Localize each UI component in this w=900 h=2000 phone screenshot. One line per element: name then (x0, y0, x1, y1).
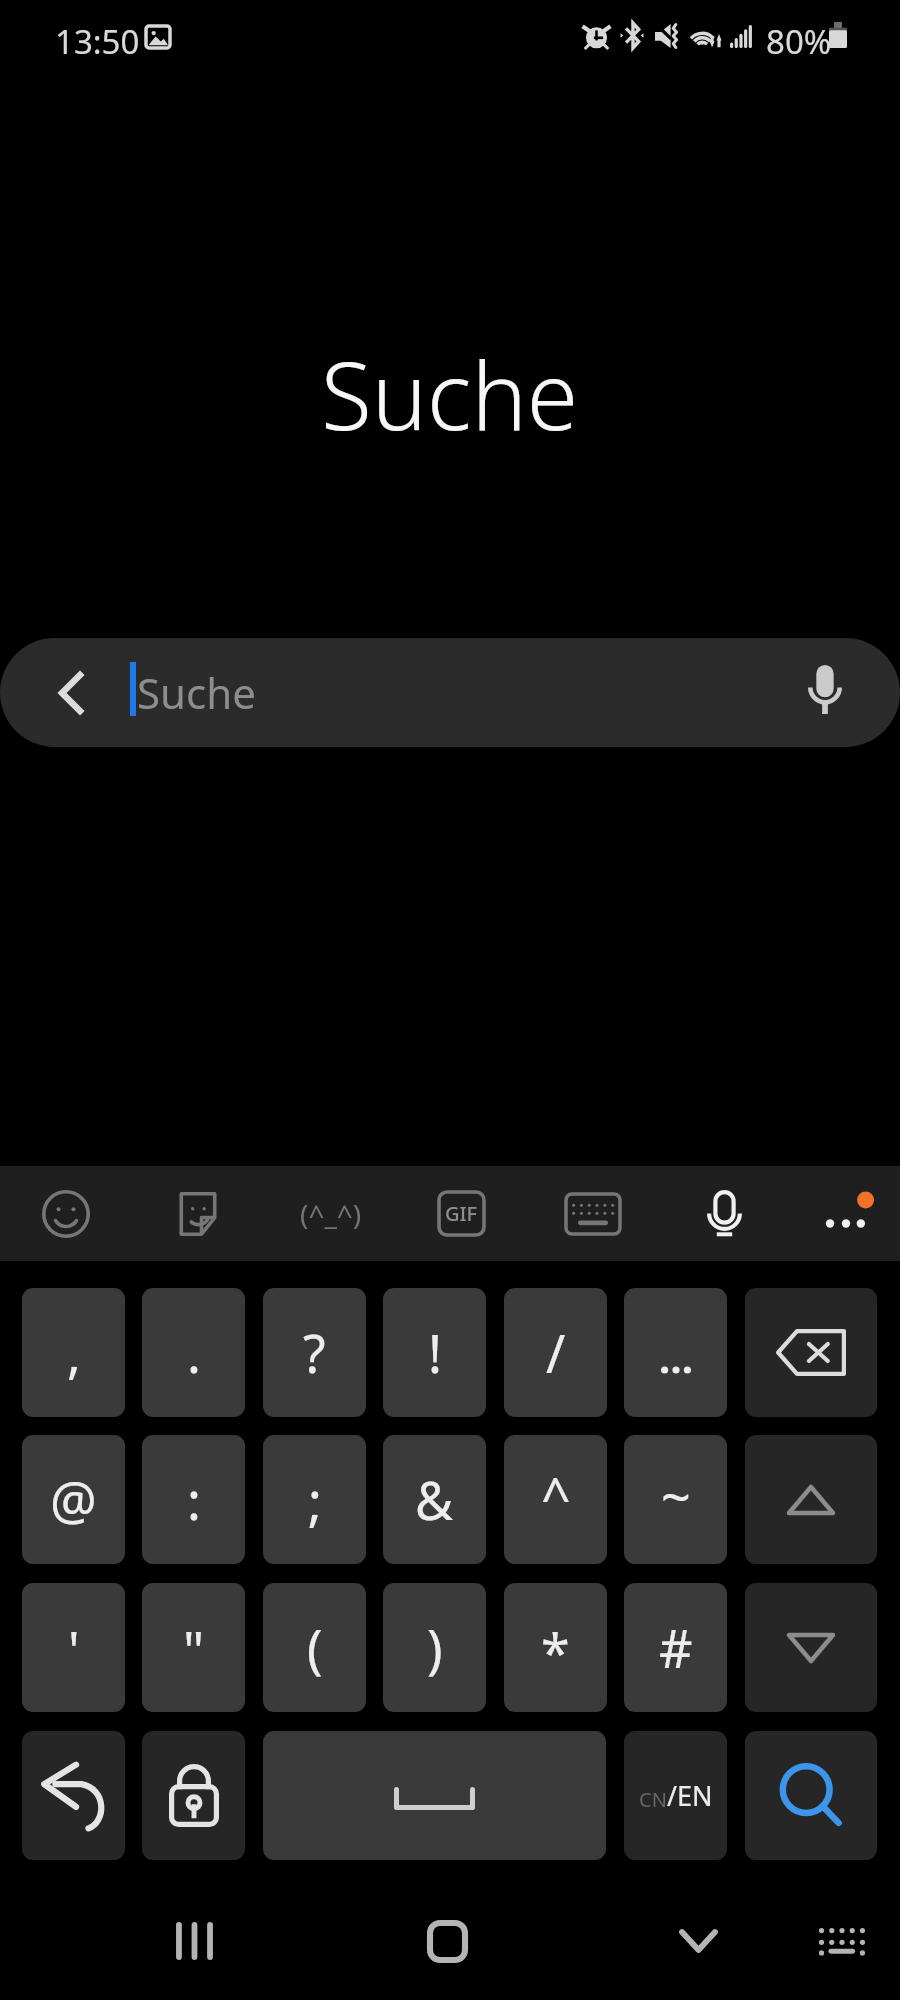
button[interactable]: Recents (134, 1882, 254, 2000)
button[interactable]: ; (263, 1435, 366, 1564)
staticText: . (187, 1317, 201, 1388)
staticText: (^_^) (300, 1195, 362, 1233)
staticText: # (659, 1612, 693, 1683)
button[interactable] (263, 1731, 606, 1860)
staticText: , (67, 1317, 81, 1388)
button[interactable]: Stickers (153, 1166, 243, 1261)
button[interactable]: Home (387, 1882, 507, 2000)
staticText: / (546, 1317, 566, 1388)
button[interactable]: Back (0, 638, 900, 747)
button[interactable]: Voice search (785, 650, 865, 730)
button[interactable]: Keyboard layout (548, 1166, 638, 1261)
button[interactable]: " (142, 1583, 245, 1712)
button[interactable] (22, 1731, 125, 1860)
staticText: Suche (137, 664, 256, 721)
button[interactable]: ' (22, 1583, 125, 1712)
button[interactable]: GIF (416, 1166, 506, 1261)
staticText: 13:50 (55, 19, 140, 64)
button[interactable]: ~ (624, 1435, 727, 1564)
staticText: ! (428, 1317, 442, 1388)
staticText: 80% (766, 19, 832, 64)
staticText: CN (639, 1786, 667, 1813)
button[interactable] (745, 1731, 877, 1860)
staticText: @ (50, 1464, 97, 1535)
staticText: ; (308, 1464, 322, 1535)
staticText: ' (68, 1614, 80, 1685)
button[interactable]: More options (801, 1166, 891, 1261)
button[interactable]: : (142, 1435, 245, 1564)
staticText: ) (427, 1612, 443, 1683)
button[interactable]: Switch keyboard (782, 1882, 900, 2000)
button[interactable]: / (504, 1288, 607, 1417)
staticText: ? (303, 1317, 326, 1388)
button[interactable]: ) (383, 1583, 486, 1712)
button[interactable] (745, 1435, 877, 1564)
button[interactable]: Hide keyboard (638, 1882, 758, 2000)
button[interactable]: Back (31, 653, 111, 733)
staticText: & (415, 1464, 454, 1535)
button[interactable] (142, 1731, 245, 1860)
staticText: Suche (321, 331, 579, 451)
button[interactable]: ( (263, 1583, 366, 1712)
button[interactable]: Voice input (679, 1166, 769, 1261)
button[interactable]: @ (22, 1435, 125, 1564)
staticText: ( (307, 1612, 323, 1683)
button[interactable]: ? (263, 1288, 366, 1417)
staticText: * (541, 1616, 570, 1687)
button[interactable]: . (142, 1288, 245, 1417)
button[interactable]: Emoticons (286, 1166, 376, 1261)
button[interactable]: , (22, 1288, 125, 1417)
staticText: : (187, 1464, 201, 1535)
button[interactable] (745, 1288, 877, 1417)
staticText: GIF (445, 1200, 478, 1227)
button[interactable]: ! (383, 1288, 486, 1417)
button[interactable]: CN (624, 1731, 727, 1860)
button[interactable]: Emoji (21, 1166, 111, 1261)
staticText: " (183, 1614, 205, 1685)
staticText: ^ (541, 1460, 571, 1531)
button[interactable] (624, 1288, 727, 1417)
button[interactable]: * (504, 1583, 607, 1712)
staticText: ~ (661, 1460, 691, 1531)
button[interactable]: & (383, 1435, 486, 1564)
button[interactable] (745, 1583, 877, 1712)
staticText: /EN (667, 1777, 713, 1814)
button[interactable]: # (624, 1583, 727, 1712)
button[interactable]: ^ (504, 1435, 607, 1564)
